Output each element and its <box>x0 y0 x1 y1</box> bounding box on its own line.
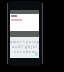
staticText: m <box>32 50 35 54</box>
staticText: z <box>14 50 16 54</box>
staticText: l <box>36 45 37 49</box>
staticText: u <box>29 40 31 44</box>
staticText: g <box>25 45 27 49</box>
staticText: i <box>32 40 33 44</box>
staticText: h <box>28 45 30 49</box>
staticText: p <box>37 40 39 44</box>
staticText: d <box>18 45 20 49</box>
staticText: j <box>31 45 32 49</box>
staticText: c <box>20 50 22 54</box>
staticText: v <box>23 50 25 54</box>
staticText: n <box>29 50 31 54</box>
staticText: q <box>10 40 12 44</box>
staticText: x <box>17 50 19 54</box>
staticText: e <box>17 40 19 44</box>
staticText: y <box>26 40 28 44</box>
staticText: t <box>23 40 25 44</box>
staticText: k <box>33 45 35 49</box>
staticText: w <box>13 40 16 44</box>
staticText: s <box>15 45 17 49</box>
staticText: b <box>26 50 28 54</box>
staticText: f <box>21 45 23 49</box>
staticText: o <box>34 40 36 44</box>
staticText: r <box>20 40 22 44</box>
staticText: a <box>12 45 14 49</box>
